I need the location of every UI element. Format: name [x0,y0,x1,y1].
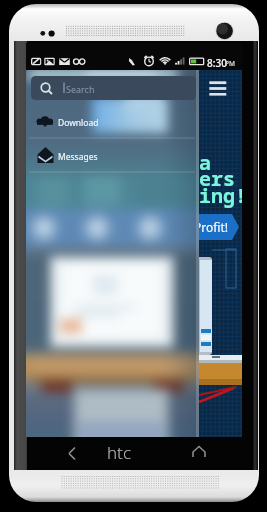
button[interactable]: Download [26,105,199,139]
button[interactable]: Messages [26,139,199,173]
staticText: Messages [58,151,98,163]
button[interactable]: Search [31,76,196,100]
staticText: htc [107,441,131,464]
staticText: 8:30 [207,56,227,70]
staticText: Search [66,83,95,95]
staticText: Download [58,117,99,129]
button[interactable]: Open menu [203,74,233,104]
button[interactable]: Home [179,437,219,470]
staticText: ing! [199,182,242,209]
staticText: PM [225,59,235,68]
staticText: Profit! [194,219,229,235]
staticText: a [199,149,211,176]
button[interactable]: Back [52,437,92,470]
staticText: ers [199,165,235,192]
